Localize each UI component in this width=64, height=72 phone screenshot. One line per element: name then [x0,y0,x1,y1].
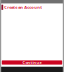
staticText: Continue [22,60,41,65]
button[interactable]: Continue [2,60,62,65]
staticText: Create an Account [4,5,42,10]
